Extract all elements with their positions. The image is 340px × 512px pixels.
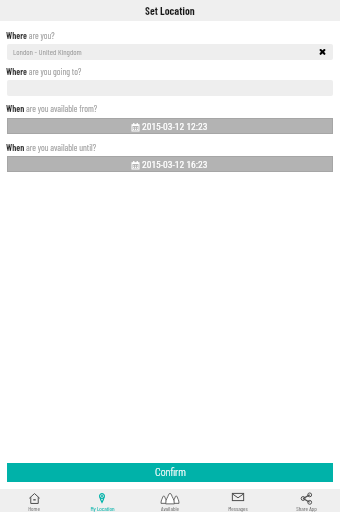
button[interactable]: 2015-03-12 16:23 [7, 156, 333, 172]
staticText: My Location [90, 505, 115, 512]
button[interactable]: Clear text [316, 46, 328, 58]
staticText: Set Location [145, 4, 195, 17]
button[interactable]: London - United Kingdom [7, 44, 333, 60]
button[interactable]: Home [0, 489, 68, 512]
staticText: 2015-03-12 12:23 [142, 121, 208, 132]
staticText: Confirm [155, 467, 186, 479]
staticText: Home [28, 505, 40, 512]
staticText: Available [161, 505, 179, 512]
staticText: 2015-03-12 16:23 [142, 159, 208, 170]
button[interactable]: Share App [272, 489, 340, 512]
staticText: When are you available from? [6, 103, 98, 114]
button[interactable]: Available [136, 489, 204, 512]
staticText: London - United Kingdom [13, 47, 82, 57]
button[interactable]: Confirm [7, 463, 333, 482]
staticText: Where are you? [6, 30, 55, 41]
staticText: Where are you going to? [6, 66, 82, 77]
button[interactable]: My Location [68, 489, 136, 512]
staticText: Messages [228, 505, 248, 512]
button[interactable]: Messages [204, 489, 272, 512]
staticText: Share App [296, 505, 317, 512]
staticText: When are you available until? [6, 142, 97, 153]
button[interactable]: 2015-03-12 12:23 [7, 118, 333, 134]
